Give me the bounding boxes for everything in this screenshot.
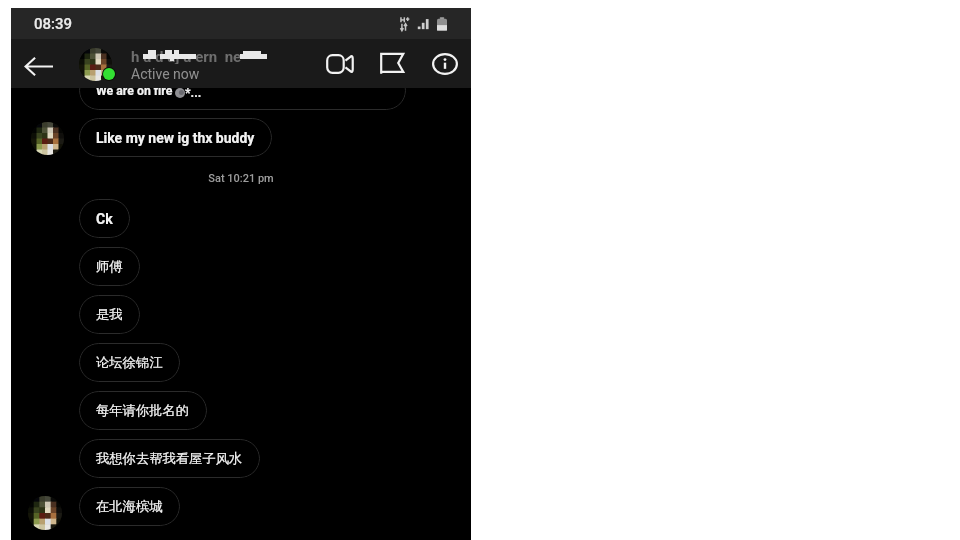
button[interactable]: Back: [19, 47, 58, 86]
button[interactable]: Profile picture: [79, 48, 116, 85]
button[interactable]: 每年请你批名的: [79, 391, 207, 430]
staticText: 是我: [96, 306, 123, 323]
button[interactable]: Video call: [321, 45, 358, 82]
staticText: h a d uj u ern ne: [131, 48, 242, 64]
button[interactable]: 是我: [79, 295, 140, 334]
staticText: 我想你去帮我看屋子风水: [96, 450, 243, 467]
staticText: 师傅: [96, 258, 123, 275]
staticText: 在北海槟城: [96, 498, 163, 515]
staticText: 08:39: [34, 15, 73, 33]
staticText: Sat 10:21 pm: [11, 172, 471, 185]
staticText: Active now: [131, 66, 200, 82]
staticText: Ck: [96, 211, 113, 227]
staticText: We are on fire: [96, 84, 173, 98]
button[interactable]: Like my new ig thx buddy: [79, 118, 272, 157]
staticText: 论坛徐锦江: [96, 354, 163, 371]
staticText: Like my new ig thx buddy: [96, 130, 255, 146]
staticText: *...: [185, 86, 202, 100]
staticText: 每年请你批名的: [96, 402, 190, 419]
button[interactable]: 在北海槟城: [79, 487, 180, 526]
button[interactable]: Ck: [79, 199, 130, 238]
button[interactable]: We are on fire: [79, 71, 406, 110]
button[interactable]: 论坛徐锦江: [79, 343, 180, 382]
button[interactable]: 我想你去帮我看屋子风水: [79, 439, 260, 478]
button[interactable]: 师傅: [79, 247, 140, 286]
button[interactable]: Flag conversation: [373, 45, 410, 82]
button[interactable]: Conversation info: [426, 45, 463, 82]
